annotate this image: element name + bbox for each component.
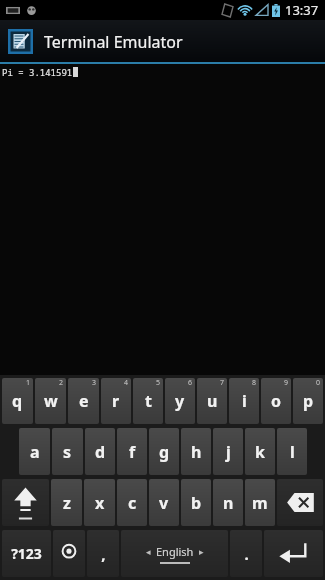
button[interactable]: Backspace (277, 479, 323, 526)
button[interactable]: g (149, 428, 179, 475)
button[interactable]: , (87, 530, 119, 577)
button[interactable]: d (85, 428, 115, 475)
staticText: 6 (188, 378, 193, 388)
staticText: l (290, 441, 295, 463)
button[interactable]: h (181, 428, 211, 475)
button[interactable]: i (229, 378, 259, 424)
button[interactable]: ?123 (2, 530, 51, 577)
staticText: 8 (252, 378, 257, 388)
button[interactable]: a (19, 428, 50, 475)
button[interactable]: r (101, 378, 131, 424)
staticText: f (129, 441, 136, 463)
staticText: b (191, 492, 202, 514)
button[interactable]: s (52, 428, 83, 475)
staticText: y (175, 390, 185, 412)
button[interactable]: m (245, 479, 275, 526)
button[interactable]: x (84, 479, 115, 526)
button[interactable]: c (117, 479, 147, 526)
button[interactable]: y (165, 378, 195, 424)
button[interactable]: Enter (264, 530, 323, 577)
button[interactable]: Input settings (53, 530, 85, 577)
button[interactable]: o (261, 378, 291, 424)
staticText: o (271, 390, 282, 412)
staticText: ▸ (199, 547, 204, 557)
staticText: 13:37 (285, 1, 319, 19)
staticText: 3 (92, 378, 97, 388)
button[interactable]: . (230, 530, 262, 577)
staticText: ◂ (146, 547, 151, 557)
staticText: 9 (284, 378, 289, 388)
staticText: p (303, 390, 314, 412)
button[interactable]: f (117, 428, 147, 475)
button[interactable]: t (133, 378, 163, 424)
button[interactable]: u (197, 378, 227, 424)
button[interactable]: Shift (2, 479, 49, 526)
staticText: 0 (316, 378, 321, 388)
button[interactable]: k (245, 428, 275, 475)
staticText: x (95, 492, 105, 514)
button[interactable]: e (68, 378, 99, 424)
button[interactable]: n (213, 479, 243, 526)
staticText: Pi = 3.141591 (2, 66, 73, 78)
button[interactable]: j (213, 428, 243, 475)
staticText: English (156, 544, 194, 559)
button[interactable]: b (181, 479, 211, 526)
staticText: m (252, 492, 268, 514)
staticText: d (95, 441, 106, 463)
button[interactable]: Space (121, 530, 228, 577)
button[interactable]: p (293, 378, 323, 424)
button[interactable]: v (149, 479, 179, 526)
staticText: i (242, 390, 247, 412)
staticText: k (255, 441, 265, 463)
staticText: 4 (124, 378, 129, 388)
staticText: s (63, 441, 72, 463)
staticText: w (44, 390, 58, 412)
button[interactable]: w (35, 378, 66, 424)
staticText: c (128, 492, 137, 514)
staticText: Terminal Emulator (44, 31, 183, 53)
staticText: a (30, 441, 40, 463)
staticText: u (207, 390, 218, 412)
staticText: z (63, 492, 71, 514)
staticText: ?123 (11, 544, 42, 563)
button[interactable]: l (277, 428, 307, 475)
button[interactable]: q (2, 378, 33, 424)
staticText: , (101, 544, 106, 564)
staticText: j (226, 441, 231, 463)
button[interactable]: z (51, 479, 82, 526)
staticText: g (159, 441, 170, 463)
staticText: . (244, 544, 249, 564)
staticText: n (223, 492, 234, 514)
staticText: q (12, 390, 23, 412)
staticText: 5 (156, 378, 161, 388)
staticText: h (191, 441, 202, 463)
staticText: t (145, 390, 152, 412)
staticText: e (79, 390, 89, 412)
staticText: 1 (26, 378, 31, 388)
staticText: r (112, 390, 120, 412)
staticText: 2 (59, 378, 64, 388)
staticText: v (159, 492, 169, 514)
staticText: 7 (220, 378, 225, 388)
